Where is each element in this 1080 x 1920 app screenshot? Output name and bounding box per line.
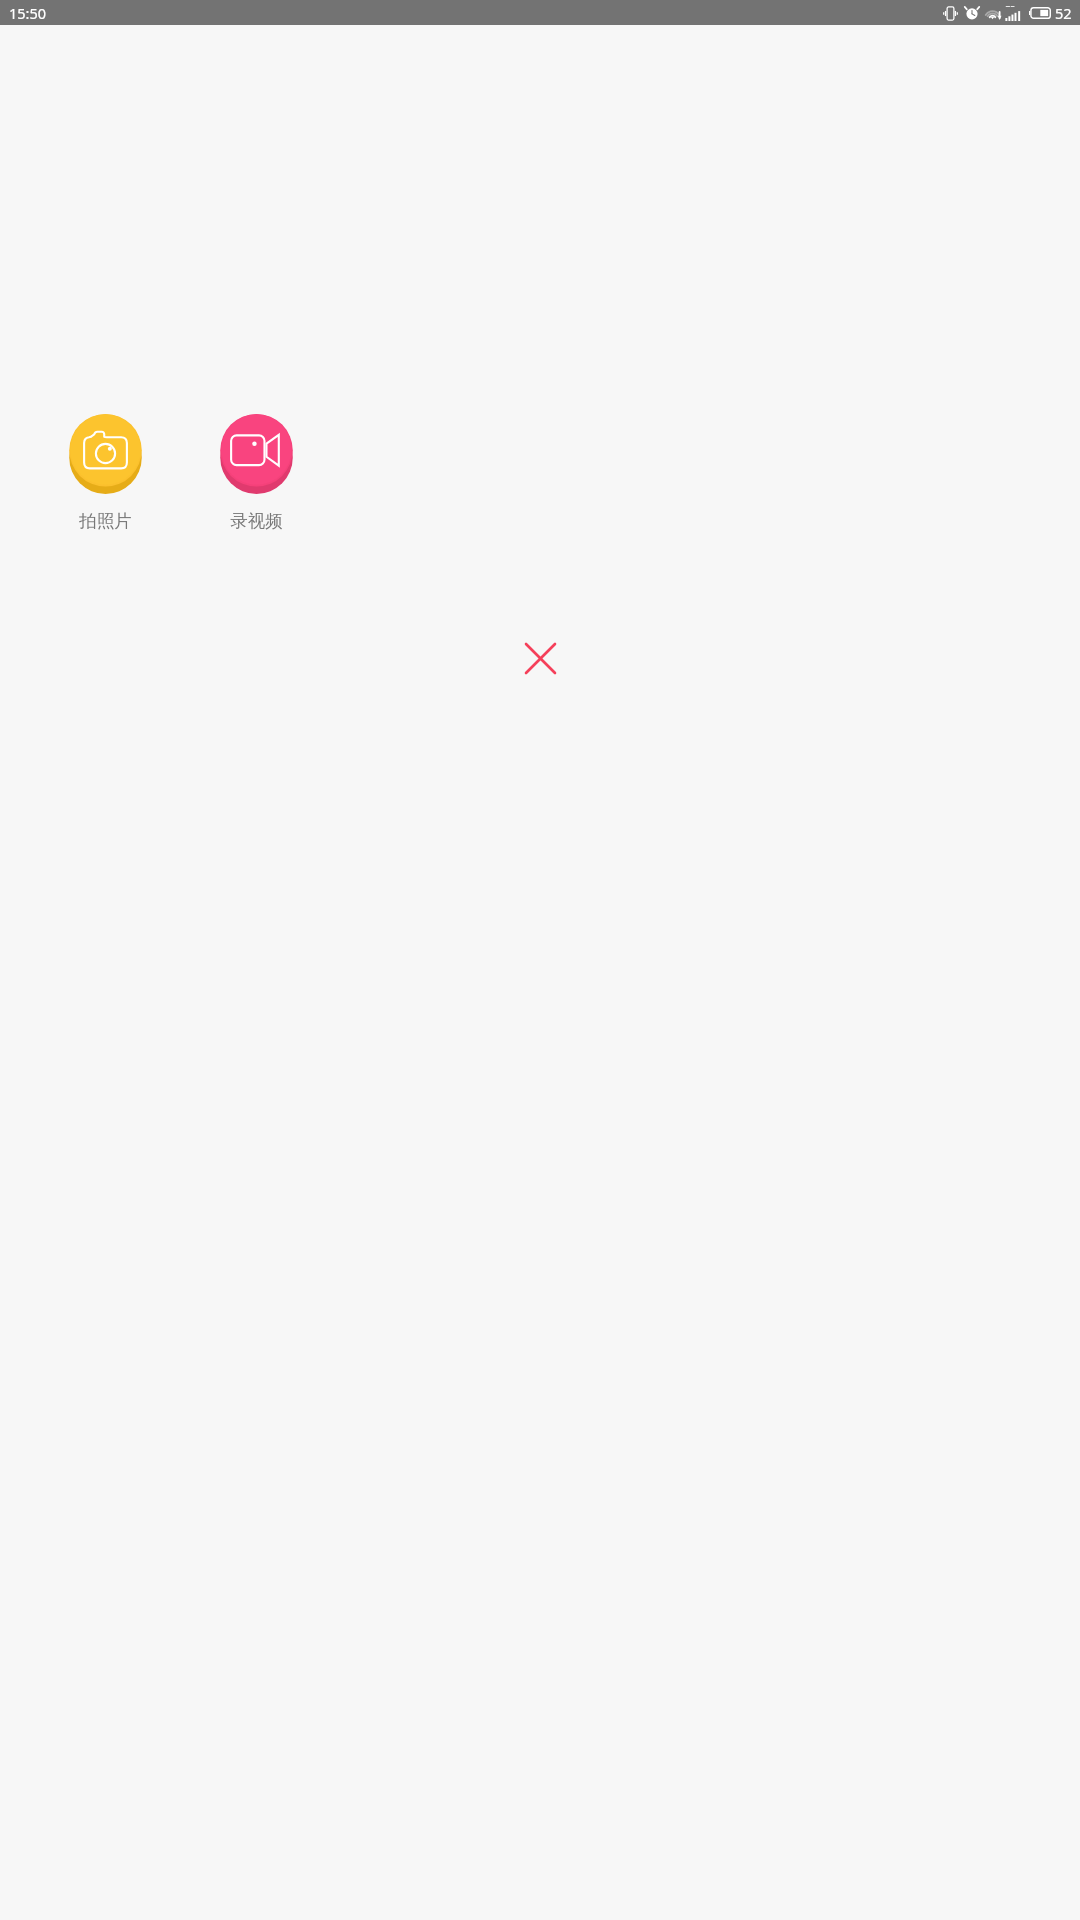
staticText: 52 [1055, 3, 1072, 23]
staticText: 录视频 [230, 510, 283, 532]
staticText: 拍照片 [79, 510, 132, 532]
button[interactable]: 录视频 [220, 414, 293, 494]
button[interactable]: 关闭 [510, 628, 570, 688]
staticText: 15:50 [9, 3, 47, 23]
button[interactable]: 拍照片 [69, 414, 142, 494]
